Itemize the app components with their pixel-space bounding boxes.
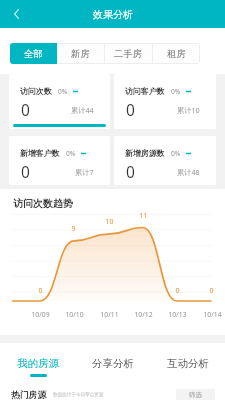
staticText: 互动分析 bbox=[167, 357, 209, 370]
staticText: 累计48 bbox=[177, 167, 200, 177]
staticText: 访问次数 bbox=[20, 86, 52, 96]
staticText: 筛选 bbox=[189, 391, 202, 399]
staticText: 10/10 bbox=[65, 310, 84, 319]
staticText: 10/14 bbox=[203, 310, 222, 319]
button[interactable]: 互动分析 bbox=[150, 343, 225, 381]
button[interactable]: 新增客户数 bbox=[9, 136, 110, 185]
button[interactable]: 访问客户数 bbox=[114, 74, 216, 129]
staticText: 9 bbox=[71, 224, 76, 234]
staticText: 我的房源 bbox=[17, 357, 59, 370]
staticText: 访问客户数 bbox=[125, 86, 165, 96]
staticText: 0 bbox=[126, 99, 135, 120]
staticText: 访问次数趋势 bbox=[13, 197, 73, 210]
button[interactable]: 二手房 bbox=[104, 43, 152, 64]
button[interactable]: 筛选 bbox=[176, 389, 215, 400]
staticText: 数据统计于今日零点更新 bbox=[53, 392, 104, 398]
staticText: 热门房源 bbox=[11, 390, 47, 400]
staticText: 0% bbox=[66, 149, 76, 158]
staticText: 租房 bbox=[167, 48, 186, 60]
staticText: 10/13 bbox=[168, 310, 187, 319]
staticText: 0 bbox=[21, 99, 30, 120]
staticText: 新房 bbox=[71, 48, 90, 60]
staticText: 累计44 bbox=[71, 105, 94, 115]
staticText: 效果分析 bbox=[93, 8, 133, 21]
staticText: 11 bbox=[139, 211, 148, 221]
staticText: 分享分析 bbox=[92, 357, 134, 370]
staticText: 0% bbox=[171, 87, 181, 96]
staticText: 0 bbox=[21, 161, 30, 182]
button[interactable]: 租房 bbox=[152, 43, 200, 64]
button[interactable]: 分享分析 bbox=[75, 343, 150, 381]
staticText: 0 bbox=[126, 161, 135, 182]
staticText: 10/09 bbox=[31, 310, 50, 319]
button[interactable]: 新增房源数 bbox=[114, 136, 216, 185]
staticText: 10 bbox=[105, 217, 114, 227]
staticText: 累计10 bbox=[177, 105, 200, 115]
staticText: 0% bbox=[58, 87, 68, 96]
staticText: 新增客户数 bbox=[20, 148, 60, 158]
staticText: 全部 bbox=[24, 48, 43, 60]
button[interactable]: 我的房源 bbox=[0, 343, 75, 381]
staticText: 0 bbox=[175, 286, 180, 296]
staticText: 新增房源数 bbox=[125, 148, 165, 158]
staticText: 二手房 bbox=[114, 48, 142, 60]
button[interactable]: 全部 bbox=[10, 43, 57, 64]
staticText: 累计7 bbox=[75, 167, 94, 177]
button[interactable]: 新房 bbox=[57, 43, 104, 64]
button[interactable]: Back bbox=[0, 0, 32, 28]
staticText: 10/12 bbox=[134, 310, 153, 319]
button[interactable]: 访问次数 bbox=[9, 74, 110, 129]
staticText: 0 bbox=[38, 286, 43, 296]
staticText: 0 bbox=[209, 286, 214, 296]
staticText: 10/11 bbox=[100, 310, 119, 319]
staticText: 0% bbox=[171, 149, 181, 158]
